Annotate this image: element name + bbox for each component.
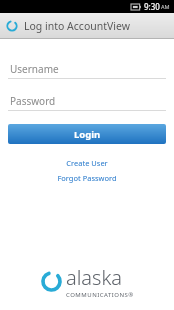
staticText: Create User bbox=[66, 158, 108, 168]
staticText: alaska bbox=[66, 264, 123, 291]
staticText: Forgot Password bbox=[57, 173, 117, 183]
other: AccountView logo bbox=[5, 19, 19, 33]
staticText: Login bbox=[74, 128, 101, 141]
button[interactable]: Username bbox=[8, 61, 166, 79]
staticText: 9:30 bbox=[144, 1, 160, 12]
button[interactable]: Login bbox=[8, 124, 166, 144]
button[interactable]: Forgot Password bbox=[0, 173, 174, 183]
staticText: AM bbox=[161, 3, 170, 10]
staticText: Password bbox=[10, 94, 56, 108]
staticText: Log into AccountView bbox=[24, 19, 130, 33]
button[interactable]: Password bbox=[8, 93, 166, 111]
staticText: COMMUNICATIONS® bbox=[66, 291, 134, 299]
staticText: Username bbox=[10, 62, 59, 76]
button[interactable]: Create User bbox=[0, 158, 174, 168]
